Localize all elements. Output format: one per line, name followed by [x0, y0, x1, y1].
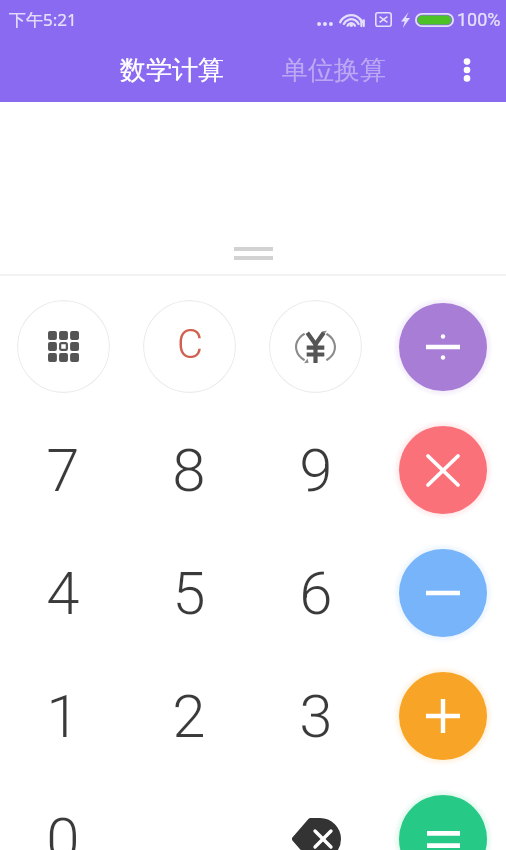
button[interactable]: Multiply	[399, 426, 487, 514]
staticText: 5	[172, 558, 206, 628]
staticText: 6	[299, 558, 333, 628]
staticText: 4	[46, 558, 80, 628]
button[interactable]: 6	[266, 543, 366, 643]
button[interactable]: 2	[139, 666, 239, 766]
button[interactable]: 7	[13, 420, 113, 520]
button[interactable]: 4	[13, 543, 113, 643]
button[interactable]: Currency converter	[269, 300, 362, 393]
button[interactable]: 0	[13, 789, 113, 850]
staticText: 1	[46, 681, 80, 751]
button[interactable]: 5	[139, 543, 239, 643]
button[interactable]: Clear	[143, 300, 236, 393]
button[interactable]: Subtract	[399, 549, 487, 637]
staticText: 0	[46, 804, 80, 850]
staticText: 3	[299, 681, 333, 751]
button[interactable]: 3	[266, 666, 366, 766]
staticText: C	[177, 321, 203, 368]
staticText: 单位换算	[282, 54, 386, 87]
staticText: 数学计算	[120, 54, 224, 87]
staticText: 7	[46, 435, 80, 505]
button[interactable]: Equals	[399, 795, 487, 850]
button[interactable]: 单位换算	[278, 38, 390, 102]
button[interactable]: More options	[428, 38, 506, 102]
button[interactable]: Keypad	[17, 300, 110, 393]
button[interactable]: 8	[139, 420, 239, 520]
staticText: 8	[172, 435, 206, 505]
staticText: 9	[299, 435, 333, 505]
staticText: 2	[172, 681, 206, 751]
button[interactable]: 9	[266, 420, 366, 520]
button[interactable]: 1	[13, 666, 113, 766]
button[interactable]: 数学计算	[116, 38, 228, 102]
staticText: 下午5:21	[9, 8, 77, 31]
button[interactable]: Add	[399, 672, 487, 760]
button[interactable]: Backspace	[268, 791, 364, 850]
button[interactable]: Divide	[399, 303, 487, 391]
staticText: 100%	[457, 9, 501, 30]
